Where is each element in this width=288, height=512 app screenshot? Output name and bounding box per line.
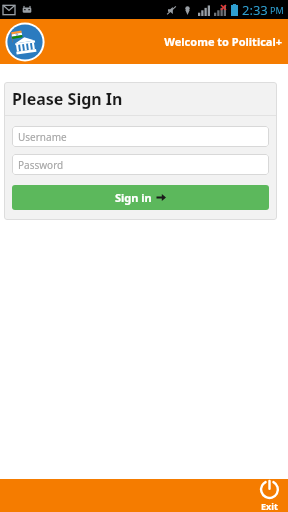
- button[interactable]: Sign in: [12, 185, 269, 210]
- staticText: Exit: [261, 500, 278, 512]
- button[interactable]: Password: [12, 154, 269, 175]
- staticText: Password: [18, 158, 64, 172]
- button[interactable]: Username: [12, 126, 269, 147]
- staticText: Username: [18, 130, 67, 144]
- staticText: Sign in: [115, 190, 152, 205]
- staticText: Please Sign In: [12, 88, 123, 110]
- button[interactable]: Exit: [259, 479, 280, 512]
- staticText: PM: [270, 4, 284, 16]
- staticText: 2:33: [242, 1, 268, 19]
- staticText: Welcome to Political+: [0, 34, 282, 49]
- button[interactable]: Political+ home: [5, 22, 45, 62]
